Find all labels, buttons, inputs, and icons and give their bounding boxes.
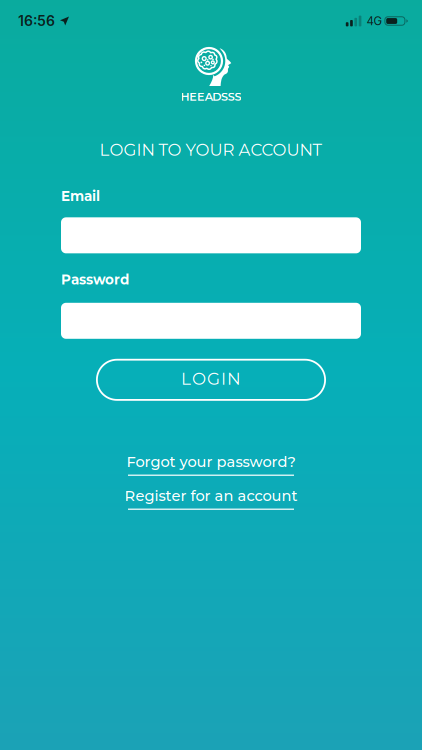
staticText: Register for an account: [124, 487, 297, 505]
staticText: LOGIN TO YOUR ACCOUNT: [99, 140, 322, 160]
staticText: Password: [61, 271, 129, 288]
button[interactable]: Forgot your password?: [126, 453, 295, 476]
staticText: 4G: [366, 14, 382, 28]
staticText: 16:56: [18, 12, 55, 29]
button[interactable]: Register for an account: [124, 487, 297, 510]
staticText: LOGIN: [181, 369, 241, 389]
staticText: Email: [61, 188, 100, 204]
staticText: HEEADSSS: [180, 90, 241, 104]
staticText: Forgot your password?: [126, 453, 295, 471]
button[interactable]: LOGIN: [96, 359, 326, 401]
